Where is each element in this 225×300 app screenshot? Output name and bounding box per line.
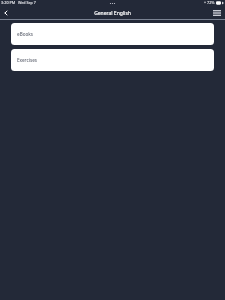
staticText: General English [94,10,131,17]
button[interactable]: Menu [212,8,221,17]
staticText: 3:20 PM [1,0,16,5]
staticText: eBooks [17,31,34,37]
staticText: Exercises [17,57,38,63]
button[interactable]: Exercises [11,49,214,71]
button[interactable]: Back [2,9,10,17]
button[interactable]: eBooks [11,23,214,45]
staticText: Wed Sep 7 [18,0,36,5]
staticText: 72% [207,0,215,5]
